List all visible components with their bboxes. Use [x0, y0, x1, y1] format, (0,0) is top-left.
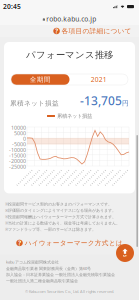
- staticText: -13,705: [80, 92, 122, 108]
- staticText: 2021: [91, 75, 107, 84]
- staticText: 5000: [14, 130, 26, 137]
- staticText: 各項目の詳細について: [61, 27, 131, 35]
- staticText: © Kabu.com Securities Co., Ltd. All righ…: [25, 289, 114, 294]
- staticText: 10000: [11, 124, 26, 131]
- button[interactable]: robo.kabu.co.jp: [0, 13, 139, 25]
- button[interactable]: ?: [0, 232, 139, 254]
- staticText: 金融商品取引業者 関東財務局長（金商）第60号: [6, 266, 91, 271]
- button[interactable]: ?: [0, 25, 139, 37]
- staticText: -25000: [9, 163, 26, 170]
- staticText: 累積ネット損益: [57, 113, 92, 119]
- button[interactable]: Back to top: [116, 244, 134, 262]
- staticText: ※投資顧問サービス契約のお客さまのパフォーマンスです。: [5, 201, 112, 207]
- staticText: 加入協会：日本証券業協会 一般社団法人金融先物取引業協会: [6, 272, 115, 277]
- staticText: 全期間: [30, 75, 51, 84]
- staticText: TOP: [122, 254, 127, 257]
- staticText: -10000: [9, 146, 26, 153]
- button[interactable]: 2021: [69, 74, 128, 85]
- staticText: -15000: [9, 152, 26, 159]
- staticText: ※評価額のタイミングによりマイナスになる場合があります。: [5, 208, 116, 213]
- staticText: 0: [23, 135, 26, 142]
- staticText: 20:45: [3, 2, 21, 11]
- staticText: 一般社団法人第二種金融商品取引業協会: [6, 278, 78, 283]
- staticText: robo.kabu.co.jp: [46, 15, 96, 23]
- staticText: ?: [18, 238, 21, 247]
- staticText: ハイウォーターマーク方式とは: [25, 239, 123, 247]
- staticText: ※投資顧問報酬はハイウォーターマーク方式で計算されます。: [5, 214, 116, 219]
- staticText: パフォーマンス推移: [26, 49, 113, 61]
- staticText: 円: [122, 99, 129, 107]
- staticText: ※当社の計算による数値であり、税金等は考慮しておりません。: [5, 220, 120, 226]
- button[interactable]: 全期間: [11, 74, 69, 85]
- staticText: -5000: [12, 141, 26, 148]
- staticText: kabu アコム投資顧問株式会社: [6, 259, 59, 264]
- staticText: ※ファンドラップ等、一部のサービスは除きます。: [5, 227, 96, 232]
- staticText: ?: [55, 27, 58, 35]
- staticText: 累積ネット損益: [10, 99, 59, 107]
- staticText: -20000: [9, 157, 26, 165]
